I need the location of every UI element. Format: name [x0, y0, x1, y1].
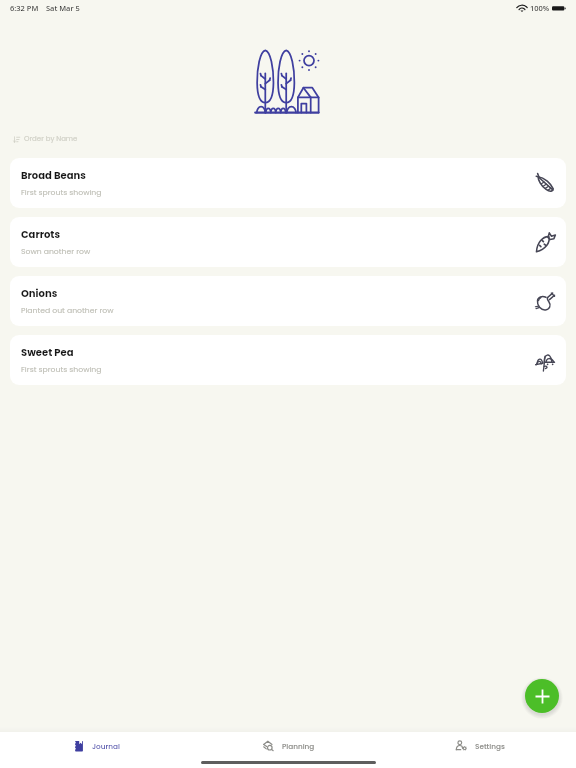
- staticText: Carrots: [21, 227, 60, 241]
- button[interactable]: Add entry: [525, 679, 559, 713]
- staticText: Sown another row: [21, 246, 91, 257]
- staticText: 6:32 PM: [10, 3, 39, 13]
- staticText: First sprouts showing: [21, 187, 102, 198]
- staticText: 100%: [530, 3, 550, 13]
- button[interactable]: Sweet Pea: [10, 335, 566, 385]
- button[interactable]: Journal: [0, 739, 192, 752]
- staticText: Sweet Pea: [21, 345, 74, 359]
- staticText: Onions: [21, 286, 58, 300]
- staticText: Journal: [92, 741, 120, 751]
- button[interactable]: Onions: [10, 276, 566, 326]
- button[interactable]: Order by Name: [13, 134, 78, 144]
- staticText: Planning: [282, 741, 315, 751]
- staticText: First sprouts showing: [21, 364, 102, 375]
- button[interactable]: Carrots: [10, 217, 566, 267]
- button[interactable]: Broad Beans: [10, 158, 566, 208]
- staticText: Sat Mar 5: [46, 3, 80, 13]
- staticText: Order by Name: [24, 134, 78, 144]
- staticText: Planted out another row: [21, 305, 114, 316]
- staticText: Broad Beans: [21, 168, 86, 182]
- staticText: Settings: [475, 741, 505, 751]
- button[interactable]: Settings: [384, 739, 576, 752]
- button[interactable]: Planning: [192, 739, 384, 752]
